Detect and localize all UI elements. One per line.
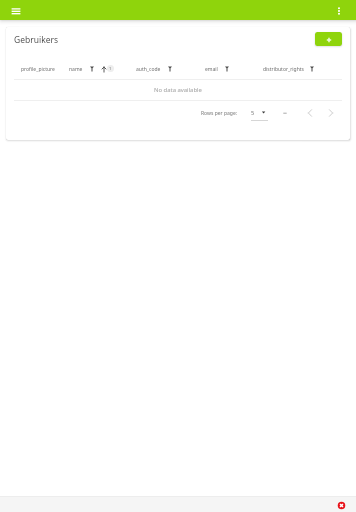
staticText: No data available [154, 86, 202, 94]
button[interactable]: Error [335, 499, 348, 512]
staticText: auth_code [136, 66, 161, 73]
staticText: email [205, 66, 218, 73]
staticText: profile_picture [21, 66, 55, 73]
staticText: 1 [109, 66, 112, 72]
staticText: distributor_rights [263, 66, 304, 73]
staticText: Gebruikers [14, 34, 59, 46]
button[interactable]: More options [331, 3, 347, 19]
staticText: Rows per page: [201, 110, 238, 117]
button[interactable]: Filter [221, 63, 233, 75]
button[interactable]: Filter [86, 63, 98, 75]
button[interactable]: Filter [164, 63, 176, 75]
staticText: name [69, 66, 83, 73]
button[interactable]: Rows per page [249, 105, 273, 123]
button[interactable]: Filter [306, 63, 318, 75]
button[interactable]: Open navigation menu [7, 2, 25, 20]
staticText: 5 [251, 109, 255, 116]
button[interactable]: Previous page [304, 107, 316, 119]
button[interactable]: Sort ascending [98, 63, 110, 75]
button[interactable]: Add user [315, 32, 342, 46]
button[interactable]: Next page [325, 107, 337, 119]
